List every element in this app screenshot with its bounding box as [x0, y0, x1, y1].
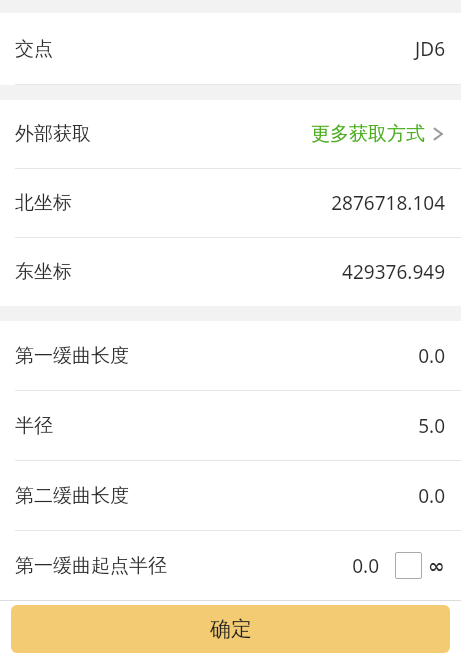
button[interactable]: 北坐标	[0, 169, 461, 237]
button[interactable]: 确定	[11, 605, 450, 653]
staticText: 0.0	[418, 483, 445, 509]
button[interactable]: 第一缓曲长度	[0, 321, 461, 390]
staticText: 第二缓曲长度	[15, 484, 129, 508]
staticText: 0.0	[418, 343, 445, 369]
button[interactable]: 第二缓曲长度	[0, 461, 461, 530]
button[interactable]: 半径	[0, 391, 461, 460]
staticText: 2876718.104	[331, 190, 445, 216]
staticText: 第一缓曲起点半径	[15, 554, 167, 578]
staticText: 北坐标	[15, 191, 72, 215]
button[interactable]: 交点	[0, 13, 461, 84]
staticText: 确定	[210, 616, 252, 642]
staticText: 0.0	[352, 553, 379, 579]
staticText: 更多获取方式	[311, 122, 425, 146]
button[interactable]: Infinity checkbox	[395, 552, 422, 579]
button[interactable]: 东坐标	[0, 238, 461, 306]
staticText: JD6	[415, 36, 445, 62]
staticText: 外部获取	[15, 122, 91, 146]
button[interactable]: 第一缓曲起点半径	[0, 531, 461, 600]
staticText: 第一缓曲长度	[15, 344, 129, 368]
button[interactable]: 外部获取	[0, 100, 461, 168]
staticText: 交点	[15, 37, 53, 61]
staticText: 429376.949	[342, 259, 445, 285]
staticText: ∞	[428, 554, 445, 577]
staticText: 东坐标	[15, 260, 72, 284]
staticText: 半径	[15, 414, 53, 438]
staticText: 5.0	[418, 413, 445, 439]
